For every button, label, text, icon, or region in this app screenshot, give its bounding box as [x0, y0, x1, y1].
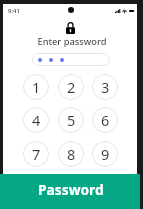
staticText: 4	[32, 110, 41, 130]
button[interactable]: 4	[23, 107, 49, 133]
staticText: 7	[32, 144, 41, 164]
button[interactable]	[32, 53, 110, 66]
staticText: 2	[67, 77, 76, 97]
staticText: 8	[67, 144, 76, 164]
button[interactable]: 7	[23, 141, 49, 167]
staticText: 9	[101, 144, 110, 164]
staticText: 5	[67, 110, 76, 130]
button[interactable]: 3	[92, 74, 118, 100]
button[interactable]: 1	[23, 74, 49, 100]
button[interactable]: 8	[58, 141, 84, 167]
button[interactable]: 5	[58, 107, 84, 133]
staticText: Password	[38, 180, 104, 199]
staticText: Enter password	[37, 35, 107, 48]
button[interactable]: Password	[0, 174, 140, 209]
button[interactable]: 9	[92, 141, 118, 167]
staticText: 1	[32, 77, 41, 97]
button[interactable]: 2	[58, 74, 84, 100]
staticText: 6	[101, 110, 110, 130]
staticText: 9:41	[8, 7, 20, 15]
button[interactable]: 6	[92, 107, 118, 133]
staticText: 3	[101, 77, 110, 97]
